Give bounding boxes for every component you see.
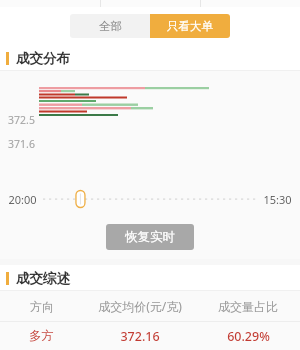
button[interactable]: Time slider: [43, 183, 257, 215]
staticText: 15:30: [263, 192, 292, 207]
staticText: 372.5: [8, 113, 35, 127]
staticText: 371.6: [8, 137, 35, 151]
button[interactable]: 多方: [0, 322, 300, 350]
staticText: 成交量占比: [218, 299, 278, 314]
staticText: 372.16: [120, 328, 160, 345]
staticText: 多方: [29, 328, 54, 344]
button[interactable]: 只看大单: [150, 14, 230, 38]
staticText: 恢复实时: [125, 229, 175, 245]
staticText: 60.29%: [227, 328, 270, 345]
staticText: 成交分布: [16, 50, 70, 67]
button[interactable]: 全部: [70, 14, 150, 38]
button[interactable]: 方向: [0, 291, 300, 321]
staticText: 成交综述: [16, 270, 70, 287]
staticText: 成交均价(元/克): [98, 298, 182, 314]
staticText: 全部: [99, 19, 122, 33]
staticText: 只看大单: [167, 19, 213, 33]
button[interactable]: 恢复实时: [106, 224, 194, 250]
staticText: 方向: [30, 299, 54, 314]
staticText: 20:00: [8, 192, 37, 207]
